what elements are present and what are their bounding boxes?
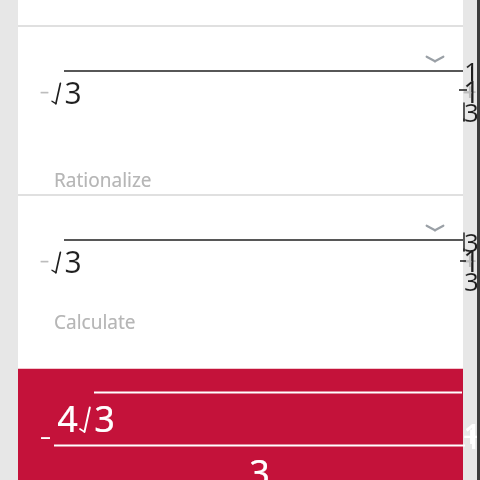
staticText: –: [40, 421, 51, 450]
button[interactable]: –: [18, 196, 463, 368]
staticText: Calculate: [54, 309, 136, 335]
staticText: 4: [57, 394, 78, 443]
button[interactable]: –: [18, 27, 463, 194]
staticText: 3: [249, 448, 270, 480]
staticText: 3: [64, 241, 82, 282]
button[interactable]: –: [18, 369, 463, 480]
staticText: 3: [64, 72, 82, 113]
staticText: 3: [94, 394, 115, 443]
button[interactable]: Expand steps: [415, 208, 455, 248]
staticText: –: [40, 248, 49, 273]
staticText: Rationalize: [54, 167, 152, 193]
staticText: –: [40, 79, 49, 104]
button[interactable]: Expand steps: [415, 39, 455, 79]
